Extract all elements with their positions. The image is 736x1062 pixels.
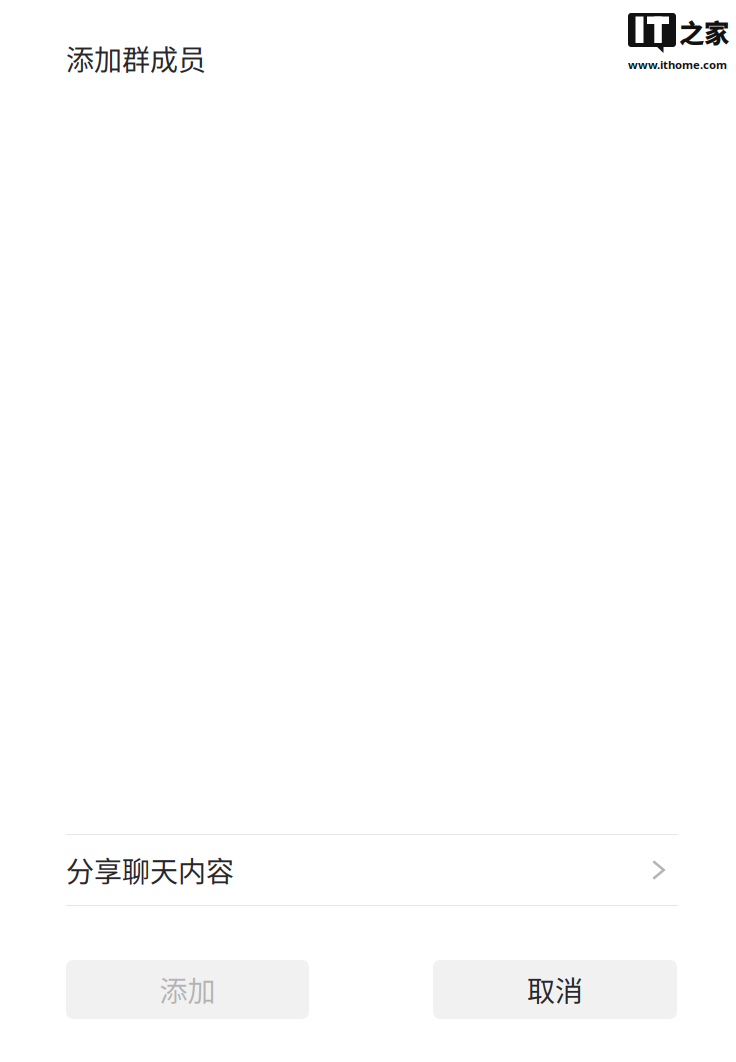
button[interactable]: 添加 — [66, 960, 309, 1019]
button[interactable]: 分享聊天内容 — [0, 835, 736, 905]
staticText: 分享聊天内容 — [66, 850, 234, 890]
staticText: www.ithome.com — [628, 57, 727, 72]
staticText: 取消 — [527, 969, 583, 1010]
button[interactable]: 取消 — [433, 960, 677, 1019]
staticText: 添加群成员 — [66, 38, 206, 78]
staticText: 之家 — [679, 13, 729, 50]
staticText: 添加 — [159, 969, 215, 1010]
